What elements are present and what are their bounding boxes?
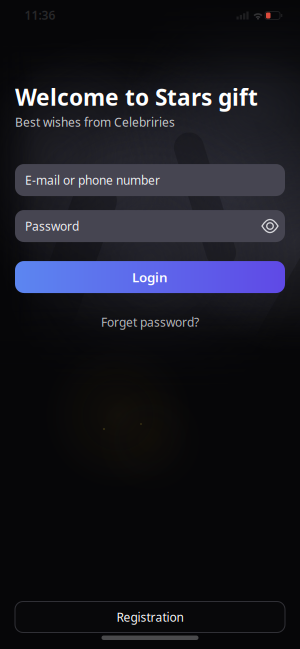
staticText: Login [132, 268, 168, 286]
staticText: Best wishes from Celebriries [15, 114, 175, 130]
button[interactable]: Registration [15, 601, 285, 632]
button[interactable]: Forget password? [101, 314, 199, 330]
button[interactable]: Login [15, 261, 285, 293]
staticText: E-mail or phone number [25, 172, 160, 188]
button[interactable]: Password [15, 210, 285, 242]
button[interactable]: E-mail or phone number [15, 164, 285, 196]
button[interactable]: Show password [255, 210, 285, 242]
staticText: 11:36 [24, 7, 55, 23]
staticText: Registration [116, 609, 183, 625]
staticText: Password [25, 218, 79, 234]
staticText: Welcome to Stars gift [15, 82, 258, 112]
staticText: Forget password? [101, 314, 199, 330]
